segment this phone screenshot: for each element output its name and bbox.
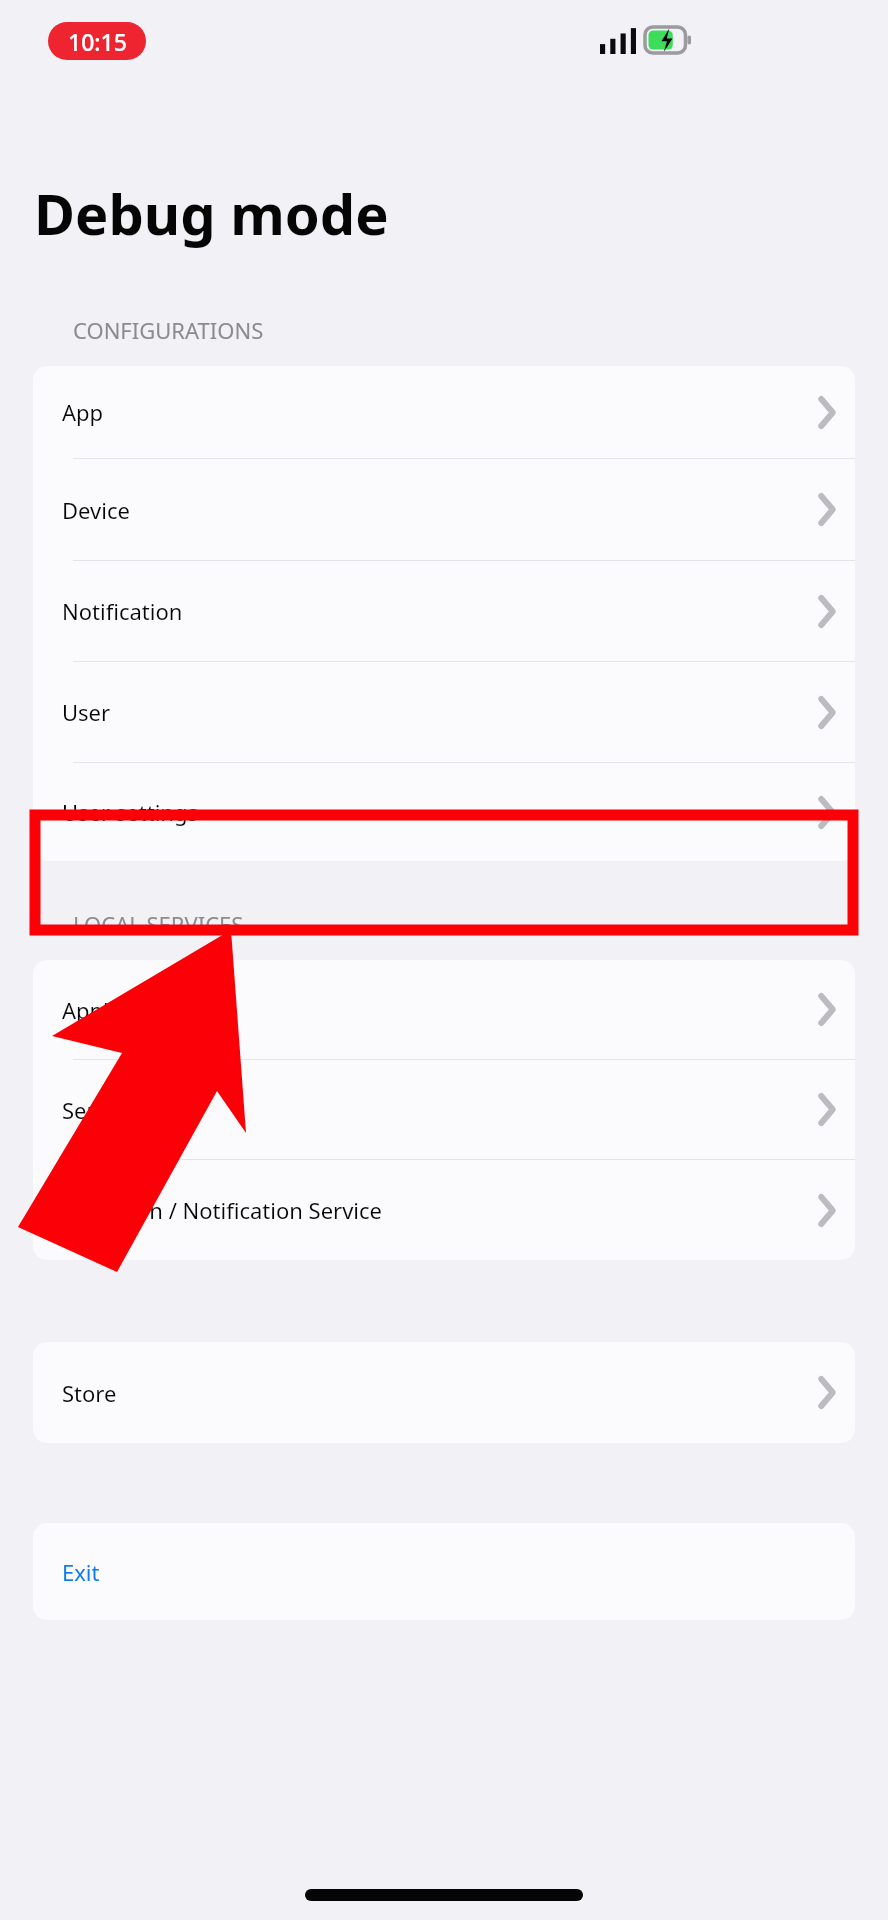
- staticText: Exit: [62, 1557, 100, 1587]
- button[interactable]: Notification: [33, 561, 855, 661]
- button[interactable]: Device: [33, 459, 855, 560]
- button[interactable]: User settings: [33, 763, 855, 861]
- button[interactable]: Exit: [33, 1523, 855, 1620]
- staticText: Device: [62, 495, 130, 525]
- staticText: CONFIGURATIONS: [73, 315, 264, 345]
- staticText: Notification: [62, 596, 183, 626]
- staticText: 10:15: [68, 26, 127, 57]
- button[interactable]: Service: [33, 1060, 855, 1159]
- staticText: LOCAL SERVICES: [73, 909, 244, 939]
- button[interactable]: User: [33, 662, 855, 762]
- button[interactable]: App: [33, 366, 855, 458]
- staticText: User: [62, 697, 111, 727]
- staticText: App: [62, 397, 104, 427]
- staticText: Service: [62, 1095, 136, 1125]
- staticText: Application: [62, 995, 178, 1025]
- staticText: Debug mode: [34, 175, 389, 251]
- button[interactable]: Application: [33, 960, 855, 1059]
- staticText: User settings: [62, 797, 199, 827]
- button[interactable]: Store: [33, 1342, 855, 1443]
- button[interactable]: Extension / Notification Service: [33, 1160, 855, 1260]
- staticText: Store: [62, 1378, 117, 1408]
- staticText: Extension / Notification Service: [62, 1195, 382, 1225]
